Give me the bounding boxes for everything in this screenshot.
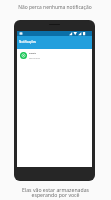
staticText: Projeto	[29, 52, 36, 55]
staticText: Não perca nenhuma notificação	[18, 4, 92, 11]
staticText: Elas vão estar armazenadas esperando por…	[22, 186, 89, 199]
staticText: Notificações	[19, 40, 37, 44]
button[interactable]: Projeto	[17, 50, 92, 60]
staticText: agora mesmo	[29, 57, 40, 59]
